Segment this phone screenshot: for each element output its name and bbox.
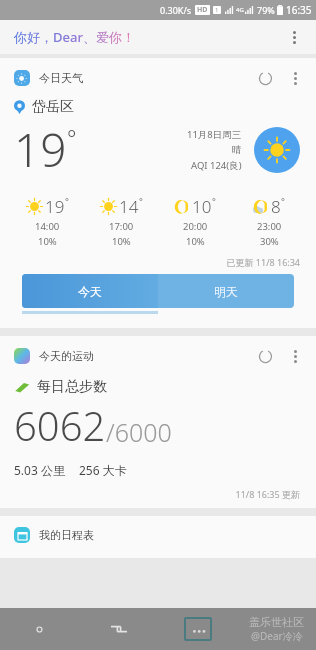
staticText: /6000: [106, 415, 172, 449]
staticText: °: [139, 195, 143, 207]
staticText: 256 大卡: [79, 462, 127, 478]
button[interactable]: More options: [282, 343, 308, 369]
staticText: 10%: [38, 235, 57, 248]
button[interactable]: Refresh: [252, 65, 278, 91]
staticText: 10%: [186, 235, 205, 248]
staticText: 79%: [257, 4, 275, 16]
staticText: 今日天气: [39, 71, 83, 85]
staticText: 10%: [112, 235, 131, 248]
staticText: 8: [271, 195, 281, 218]
staticText: 1: [215, 6, 219, 14]
staticText: 今天的运动: [39, 349, 94, 363]
button[interactable]: More options: [282, 65, 308, 91]
staticText: 已更新 11/8 16:34: [0, 256, 300, 268]
button[interactable]: Back: [0, 608, 79, 650]
staticText: 20:00: [183, 220, 208, 233]
staticText: 23:00: [257, 220, 282, 233]
staticText: °: [281, 195, 285, 207]
staticText: 我的日程表: [39, 528, 94, 542]
staticText: 岱岳区: [32, 98, 74, 116]
staticText: 19: [14, 118, 67, 181]
button[interactable]: 今天: [22, 274, 158, 308]
staticText: 4G: [236, 6, 244, 14]
staticText: 盖乐世社区: [249, 615, 304, 629]
staticText: °: [65, 195, 69, 207]
button[interactable]: 明天: [158, 274, 294, 308]
button[interactable]: More options: [280, 23, 308, 51]
staticText: °: [212, 195, 216, 207]
staticText: °: [67, 122, 77, 152]
staticText: 30%: [260, 235, 279, 248]
staticText: 5.03 公里: [14, 462, 65, 478]
staticText: 晴: [232, 144, 242, 156]
staticText: @Dear冷冷: [251, 629, 303, 643]
staticText: 11/8 16:35 更新: [0, 488, 300, 500]
staticText: 19: [45, 195, 65, 218]
staticText: 16:35: [286, 3, 312, 17]
staticText: 14: [119, 195, 139, 218]
staticText: 10: [192, 195, 212, 218]
staticText: 明天: [214, 284, 238, 299]
staticText: 0.30K/s: [160, 4, 192, 16]
staticText: 你好，Dear、爱你！: [14, 28, 135, 46]
staticText: 每日总步数: [37, 378, 107, 396]
staticText: 今天: [78, 284, 102, 299]
staticText: 14:00: [35, 220, 60, 233]
staticText: 17:00: [109, 220, 134, 233]
button[interactable]: Refresh: [252, 343, 278, 369]
button[interactable]: Recents: [79, 608, 158, 650]
staticText: HD: [197, 5, 208, 15]
button[interactable]: Home: [158, 608, 237, 650]
staticText: 11月8日周三: [187, 128, 242, 141]
staticText: AQI 124(良): [191, 159, 242, 172]
staticText: 6062: [14, 398, 106, 452]
